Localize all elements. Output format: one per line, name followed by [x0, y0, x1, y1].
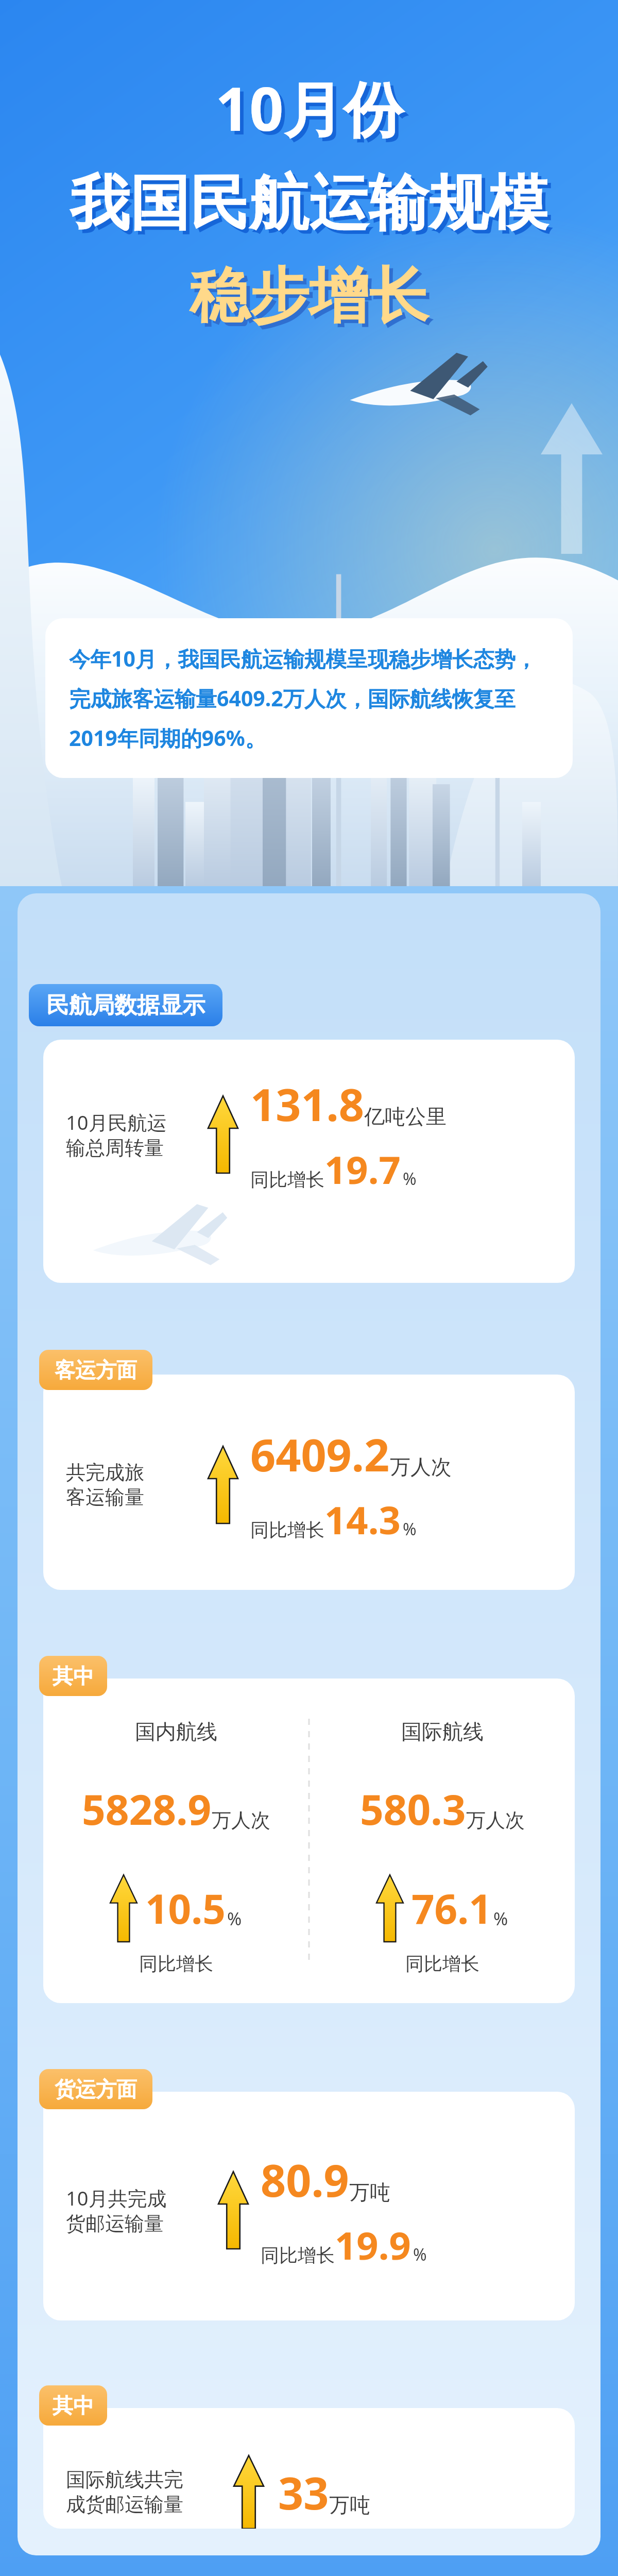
button[interactable]: 共完成旅 [43, 1375, 575, 1590]
staticText: 客运方面 [55, 1357, 137, 1383]
staticText: 民航局数据显示 [46, 991, 205, 1020]
staticText: 10.5 [145, 1881, 226, 1936]
staticText: 580.3 [360, 1781, 466, 1837]
staticText: 输总周转量 [66, 1136, 164, 1160]
button[interactable]: 国际航线 [310, 1719, 575, 1975]
staticText: 国际航线 [401, 1719, 484, 1744]
staticText: 10月份 [219, 71, 407, 152]
staticText: 今年10月，我国民航运输规模呈现稳步增长态势，完成旅客运输量6409.2万人次，… [69, 644, 549, 752]
staticText: 14.3 [324, 1494, 401, 1546]
staticText: % [413, 2243, 427, 2266]
staticText: 10月份 [215, 67, 403, 148]
staticText: 我国民航运输规模 [74, 170, 552, 245]
staticText: 我国民航运输规模 [70, 166, 548, 241]
button[interactable]: 国内航线 [43, 1679, 575, 2003]
staticText: 万人次 [466, 1808, 525, 1833]
staticText: 同比增长 [261, 2244, 335, 2267]
staticText: 万人次 [212, 1808, 270, 1833]
staticText: 19.7 [324, 1143, 401, 1195]
button[interactable]: 其中 [39, 2385, 107, 2426]
staticText: 国际航线共完 [66, 2467, 183, 2492]
button[interactable]: 今年10月，我国民航运输规模呈现稳步增长态势，完成旅客运输量6409.2万人次，… [45, 618, 573, 778]
staticText: 6409.2 [250, 1424, 390, 1484]
staticText: 10月民航运 [66, 1109, 167, 1136]
staticText: 万吨 [329, 2492, 370, 2518]
staticText: 5828.9 [82, 1781, 212, 1837]
staticText: % [403, 1518, 417, 1540]
staticText: 稳步增长 [190, 259, 428, 334]
staticText: 万吨 [349, 2179, 390, 2205]
staticText: 10月共完成 [66, 2184, 167, 2211]
button[interactable]: 10月共完成 [43, 2092, 575, 2320]
staticText: 货运方面 [55, 2076, 137, 2102]
staticText: 共完成旅 [66, 1460, 144, 1485]
staticText: 稳步增长 [193, 262, 432, 337]
staticText: 同比增长 [405, 1952, 479, 1975]
staticText: 国内航线 [135, 1719, 217, 1744]
staticText: 客运输量 [66, 1485, 144, 1510]
staticText: 货邮运输量 [66, 2211, 164, 2236]
staticText: 76.1 [411, 1881, 492, 1936]
staticText: 33 [278, 2462, 329, 2522]
staticText: 80.9 [261, 2149, 349, 2210]
button[interactable]: 货运方面 [39, 2069, 152, 2109]
staticText: 131.8 [250, 1074, 364, 1134]
staticText: % [227, 1907, 242, 1930]
button[interactable]: 国内航线 [43, 1719, 308, 1975]
staticText: 19.9 [335, 2219, 411, 2271]
staticText: % [403, 1167, 417, 1190]
staticText: 同比增长 [250, 1518, 324, 1541]
staticText: 其中 [53, 2393, 94, 2418]
staticText: 亿吨公里 [364, 1104, 447, 1129]
button[interactable]: 国际航线共完 [43, 2408, 575, 2529]
staticText: % [493, 1907, 508, 1930]
staticText: 成货邮运输量 [66, 2492, 183, 2517]
staticText: 同比增长 [250, 1168, 324, 1191]
button[interactable]: 其中 [39, 1656, 107, 1696]
button[interactable]: 民航局数据显示 [29, 984, 222, 1026]
staticText: 同比增长 [139, 1952, 213, 1975]
staticText: 其中 [53, 1663, 94, 1689]
staticText: 万人次 [390, 1454, 452, 1480]
button[interactable]: 客运方面 [39, 1350, 152, 1390]
button[interactable]: 10月民航运 [43, 1040, 575, 1283]
